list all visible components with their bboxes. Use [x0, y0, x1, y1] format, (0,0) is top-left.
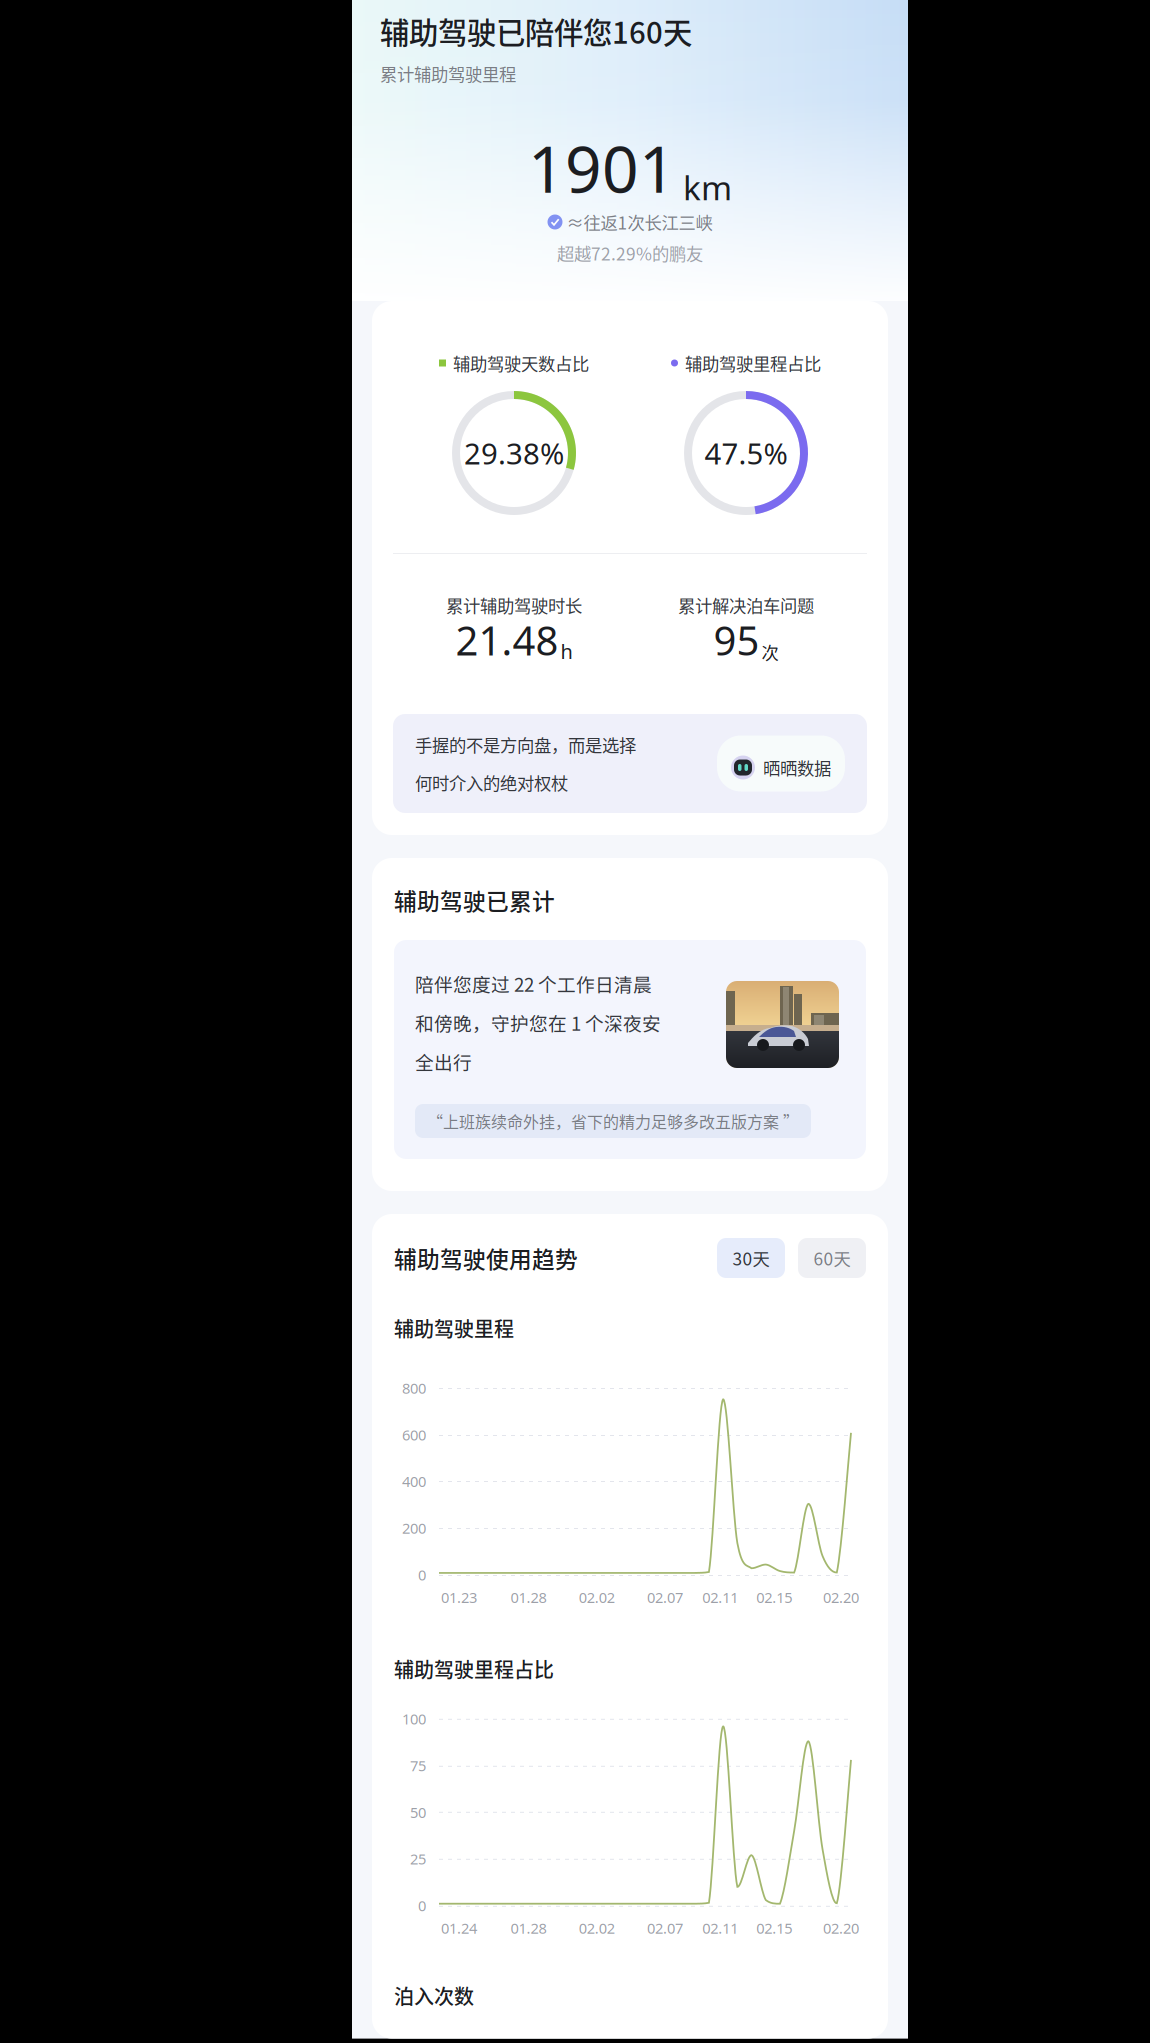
staticText: 累计解决泊车问题	[678, 592, 814, 618]
staticText: 600	[402, 1425, 426, 1444]
staticText: 02.15	[756, 1918, 792, 1938]
staticText: 全出行	[415, 1048, 472, 1075]
staticText: 辅助驾驶里程占比	[685, 350, 821, 376]
staticText: 100	[402, 1709, 426, 1729]
staticText: 1901	[528, 125, 676, 210]
staticText: 晒晒数据	[763, 755, 831, 780]
staticText: 01.24	[441, 1918, 477, 1938]
staticText: 02.11	[702, 1588, 738, 1607]
staticText: 和傍晚，守护您在 1 个深夜安	[415, 1009, 661, 1036]
staticText: 02.20	[823, 1588, 859, 1607]
staticText: 辅助驾驶天数占比	[453, 350, 589, 376]
button[interactable]: 晒晒数据	[717, 735, 845, 791]
staticText: 辅助驾驶里程占比	[394, 1654, 554, 1683]
staticText: 辅助驾驶已累计	[394, 884, 555, 916]
staticText: 400	[402, 1472, 426, 1491]
staticText: 辅助驾驶已陪伴您160天	[380, 10, 692, 52]
button[interactable]: 30天	[717, 1238, 785, 1278]
staticText: 30天	[732, 1245, 769, 1271]
staticText: 累计辅助驾驶时长	[446, 592, 582, 618]
staticText: km	[683, 165, 732, 209]
staticText: 02.20	[823, 1918, 859, 1938]
staticText: 02.15	[756, 1588, 792, 1607]
staticText: 超越72.29%的鹏友	[557, 240, 703, 266]
staticText: 01.28	[510, 1588, 546, 1607]
staticText: 泊入次数	[394, 1981, 474, 2010]
staticText: 陪伴您度过 22 个工作日清晨	[415, 970, 652, 997]
staticText: 02.02	[579, 1918, 615, 1938]
staticText: 75	[410, 1756, 426, 1775]
staticText: 200	[402, 1518, 426, 1538]
staticText: ≈往返1次长江三峡	[566, 209, 712, 235]
staticText: 800	[402, 1378, 426, 1398]
staticText: 47.5%	[704, 433, 787, 472]
staticText: 21.48	[455, 613, 558, 666]
staticText: 辅助驾驶使用趋势	[394, 1242, 578, 1274]
staticText: 01.28	[510, 1918, 546, 1938]
staticText: 50	[410, 1802, 426, 1822]
staticText: 25	[410, 1849, 426, 1869]
staticText: “上班族续命外挂，省下的精力足够多改五版方案 ”	[427, 1109, 799, 1133]
staticText: 0	[418, 1565, 426, 1585]
staticText: 95	[713, 613, 759, 666]
staticText: 0	[418, 1896, 426, 1915]
staticText: 辅助驾驶里程	[394, 1313, 514, 1342]
staticText: h	[560, 638, 572, 665]
staticText: 60天	[813, 1245, 850, 1271]
staticText: 累计辅助驾驶里程	[380, 61, 516, 86]
staticText: 02.07	[647, 1588, 683, 1607]
staticText: 02.07	[647, 1918, 683, 1938]
button[interactable]: 60天	[798, 1238, 866, 1278]
staticText: 02.02	[579, 1588, 615, 1607]
staticText: 手握的不是方向盘，而是选择	[415, 732, 636, 757]
staticText: 何时介入的绝对权杖	[415, 770, 568, 795]
staticText: 02.11	[702, 1918, 738, 1938]
staticText: 次	[761, 639, 778, 665]
staticText: 01.23	[441, 1588, 477, 1607]
staticText: 29.38%	[464, 433, 564, 472]
